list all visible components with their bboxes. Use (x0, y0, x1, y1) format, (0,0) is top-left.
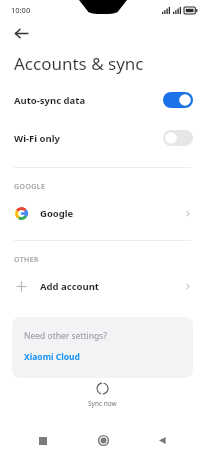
other: Sync now (96, 382, 109, 395)
button[interactable]: Home (86, 426, 120, 455)
staticText: Need other settings? (24, 330, 107, 342)
staticText: 10:00 (11, 5, 31, 15)
staticText: Google (40, 207, 184, 220)
staticText: Accounts & sync (14, 52, 144, 75)
button[interactable]: Sync now (0, 378, 205, 412)
staticText: OTHER (14, 255, 39, 265)
button[interactable]: Google (0, 200, 205, 226)
button[interactable]: Back (145, 426, 179, 455)
staticText: Auto-sync data (14, 94, 163, 107)
button[interactable]: Wi-Fi only (0, 125, 205, 151)
button[interactable]: Recents (26, 426, 60, 455)
button[interactable]: Add account (0, 273, 205, 299)
staticText: Sync now (88, 399, 117, 408)
button[interactable]: Back (8, 20, 34, 46)
button[interactable]: Need other settings? (12, 317, 193, 378)
staticText: Wi-Fi only (14, 132, 163, 145)
button[interactable]: Auto-sync data (0, 87, 205, 113)
staticText: Xiaomi Cloud (24, 351, 80, 363)
staticText: GOOGLE (14, 182, 46, 192)
staticText: Add account (40, 280, 184, 293)
